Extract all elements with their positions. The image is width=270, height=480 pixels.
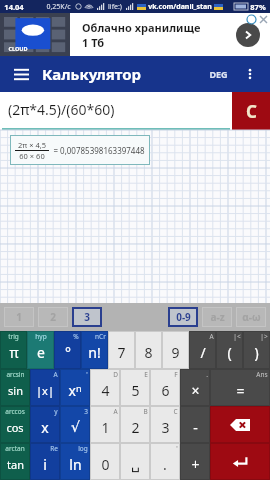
staticText: 60 × 60 xyxy=(19,151,45,161)
button[interactable]: arctan xyxy=(0,443,30,480)
staticText: CLOUD xyxy=(8,45,28,52)
button[interactable]: DEG xyxy=(205,64,232,84)
button[interactable]: Ans xyxy=(210,369,270,406)
staticText: 2π × 4,5 xyxy=(18,140,46,150)
staticText: 9 xyxy=(171,343,180,362)
button[interactable]: - xyxy=(180,406,210,443)
button[interactable]: nCr xyxy=(81,331,108,369)
staticText: 7 xyxy=(117,343,126,362)
staticText: = 0,00785398163397448 xyxy=(53,145,145,156)
button[interactable]: . xyxy=(180,369,210,406)
button[interactable]: C xyxy=(150,406,180,443)
button[interactable]: 0 xyxy=(90,443,120,480)
staticText: ' xyxy=(176,444,178,453)
staticText: - xyxy=(193,418,198,437)
staticText: DEG xyxy=(209,68,228,80)
staticText: hyp xyxy=(35,332,47,341)
staticText: nCr xyxy=(95,332,106,341)
button[interactable]: More options xyxy=(240,64,260,84)
staticText: ( xyxy=(227,343,232,362)
staticText: e xyxy=(37,343,45,362)
staticText: |> xyxy=(260,332,268,341)
button[interactable]: + xyxy=(180,443,210,480)
staticText: ° xyxy=(65,343,71,362)
button[interactable]: 3 xyxy=(60,406,90,443)
staticText: 0 xyxy=(101,455,110,474)
staticText: 1 xyxy=(101,418,110,437)
staticText: π xyxy=(9,343,19,362)
button[interactable]: ' xyxy=(60,369,90,406)
button[interactable]: Re xyxy=(30,443,60,480)
staticText: 1 xyxy=(16,310,22,324)
button[interactable]: D xyxy=(90,369,120,406)
staticText: √ xyxy=(71,419,80,435)
staticText: 3 xyxy=(84,407,88,416)
button[interactable]: Enter xyxy=(210,443,270,480)
staticText: x xyxy=(41,418,49,437)
button[interactable]: C xyxy=(232,92,270,130)
button[interactable]: F xyxy=(150,369,180,406)
staticText: ) xyxy=(254,343,259,362)
button[interactable]: A xyxy=(30,369,60,406)
staticText: a-z xyxy=(210,310,225,324)
staticText: 8 xyxy=(144,343,153,362)
staticText: C xyxy=(246,100,257,123)
button[interactable]: Open ad xyxy=(236,23,260,47)
staticText: ' xyxy=(86,370,88,379)
staticText: log xyxy=(78,444,88,453)
button[interactable]: 9 xyxy=(162,331,189,369)
button[interactable]: 2π × 4,5 xyxy=(15,135,145,165)
button[interactable]: trig xyxy=(0,331,27,369)
staticText: i xyxy=(43,455,47,474)
button[interactable]: Menu xyxy=(10,63,32,85)
staticText: + xyxy=(191,455,200,474)
button[interactable]: 1 xyxy=(4,307,34,327)
button[interactable]: A xyxy=(189,331,216,369)
button[interactable]: α-ω xyxy=(236,307,266,327)
button[interactable]: arcsin xyxy=(0,369,30,406)
staticText: 3 xyxy=(84,310,90,324)
button[interactable]: A xyxy=(90,406,120,443)
staticText: arctan xyxy=(5,444,25,453)
button[interactable]: 2 xyxy=(38,307,68,327)
staticText: trig xyxy=(8,332,19,341)
staticText: A xyxy=(53,370,58,379)
staticText: A xyxy=(113,407,118,416)
staticText: A xyxy=(209,332,214,341)
staticText: 2 xyxy=(131,418,140,437)
button[interactable]: y xyxy=(30,406,60,443)
button[interactable]: B xyxy=(120,406,150,443)
button[interactable]: log xyxy=(60,443,90,480)
button[interactable]: Ad info xyxy=(247,15,256,24)
staticText: 87% xyxy=(250,2,266,12)
button[interactable]: arccos xyxy=(0,406,30,443)
button[interactable]: Close ad xyxy=(259,15,268,24)
button[interactable]: |> xyxy=(243,331,270,369)
staticText: ln xyxy=(69,455,82,474)
button[interactable]: 3 xyxy=(72,307,102,327)
staticText: arccos xyxy=(5,407,25,416)
staticText: xⁿ xyxy=(68,381,82,400)
staticText: Калькулятор xyxy=(42,64,142,84)
staticText: y xyxy=(54,407,58,416)
staticText: arcsin xyxy=(6,370,25,379)
button[interactable]: hyp xyxy=(27,331,54,369)
staticText: sin xyxy=(8,383,23,398)
button[interactable]: a-z xyxy=(202,307,232,327)
button[interactable]: ␣ xyxy=(120,443,150,480)
staticText: 0,25K/c xyxy=(46,2,71,12)
button[interactable]: Backspace xyxy=(210,406,270,443)
button[interactable]: E xyxy=(120,369,150,406)
button[interactable]: |< xyxy=(216,331,243,369)
button[interactable]: 7 xyxy=(108,331,135,369)
button[interactable]: % xyxy=(54,331,81,369)
staticText: 4 xyxy=(101,381,110,400)
button[interactable]: 0-9 xyxy=(168,307,198,327)
staticText: . xyxy=(206,370,208,379)
staticText: Облачно хранилище xyxy=(82,20,201,35)
staticText: Re xyxy=(50,444,58,453)
staticText: 14.04 xyxy=(4,2,24,12)
staticText: 0-9 xyxy=(176,310,191,324)
button[interactable]: 8 xyxy=(135,331,162,369)
button[interactable]: ' xyxy=(150,443,180,480)
